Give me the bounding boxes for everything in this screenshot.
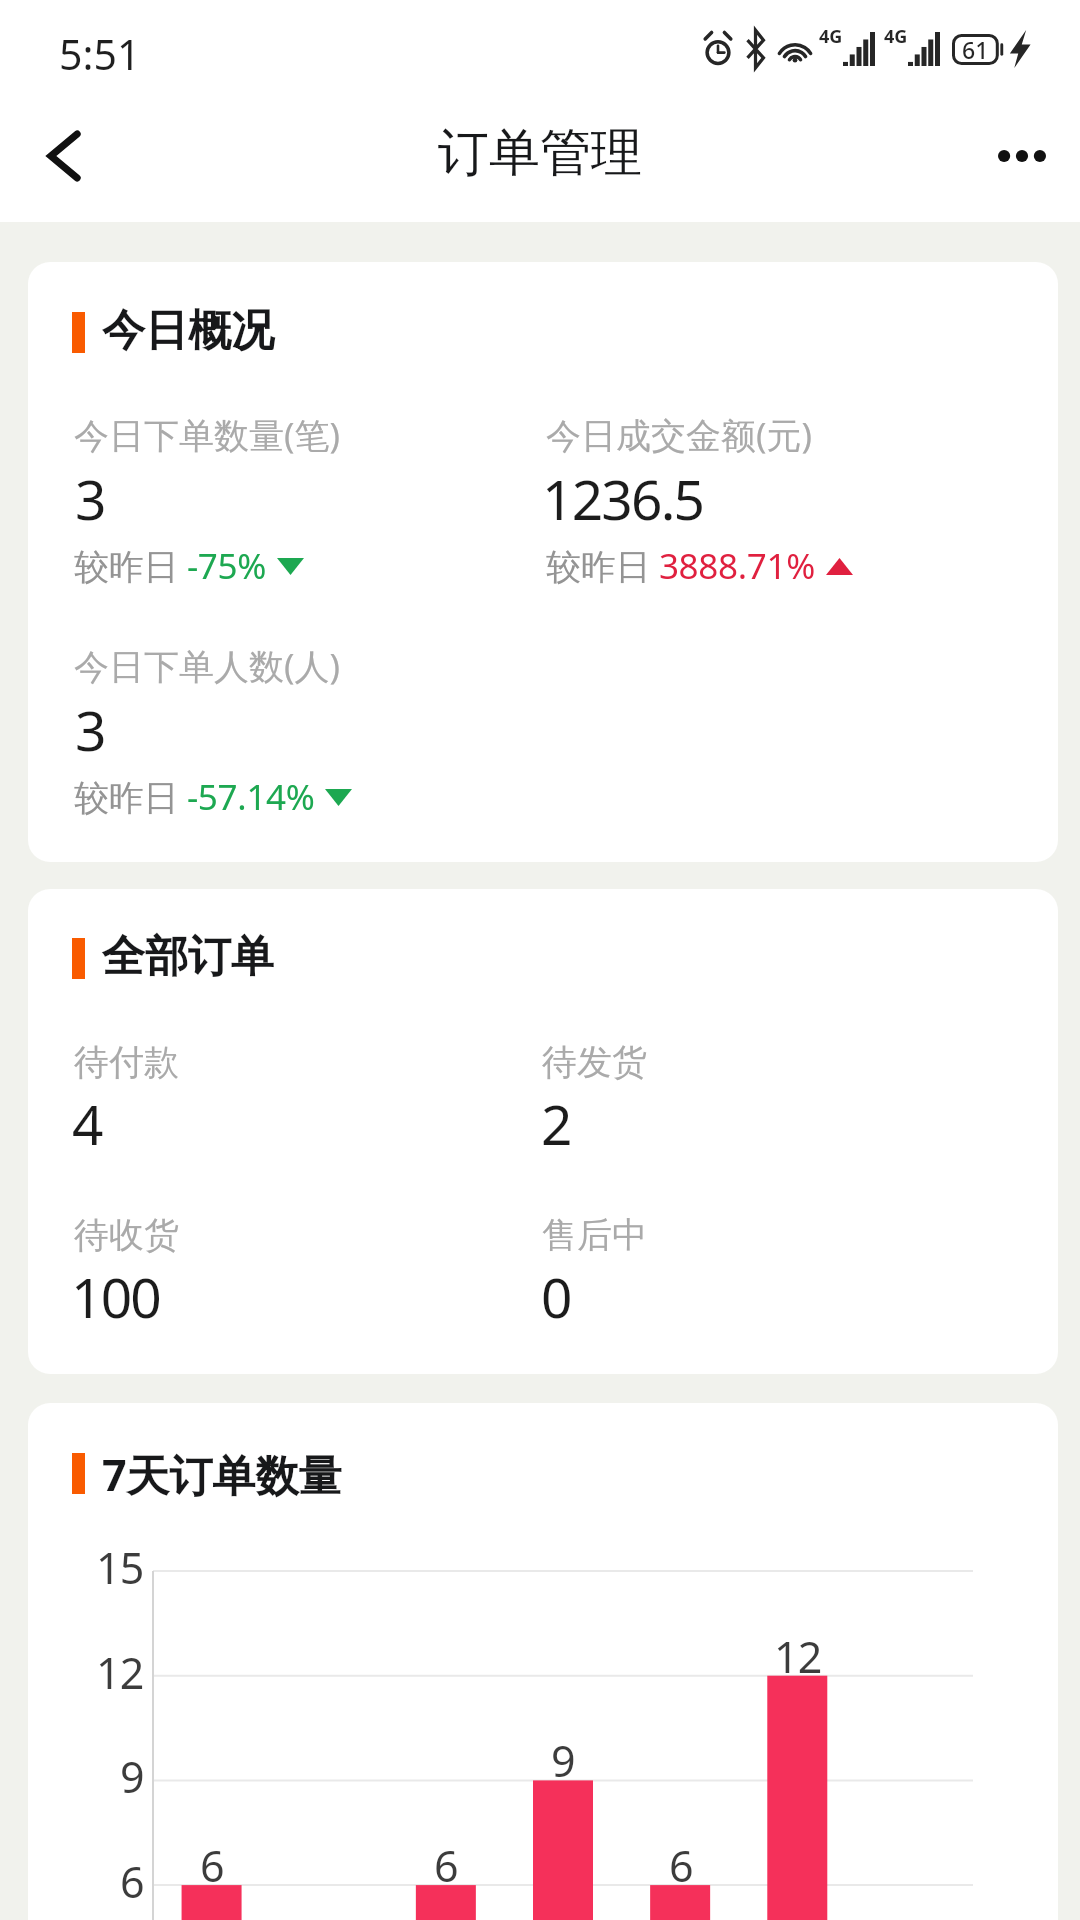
staticText: 15 <box>96 1538 144 1597</box>
button[interactable]: 今日概况 <box>28 262 1058 862</box>
staticText: 3 <box>75 692 105 767</box>
staticText: 较昨日 3888.71% <box>546 542 816 590</box>
staticText: 2 <box>541 1086 571 1161</box>
button[interactable]: 今日成交金额(元) <box>546 402 1006 592</box>
staticText: 较昨日 -57.14% <box>74 773 315 821</box>
staticText: 0 <box>541 1259 571 1334</box>
staticText: 今日下单数量(笔) <box>74 411 341 459</box>
staticText: 4 <box>72 1086 102 1161</box>
staticText: 今日下单人数(人) <box>74 642 341 690</box>
staticText: 待发货 <box>542 1040 647 1084</box>
staticText: 6 <box>669 1836 693 1895</box>
staticText: 100 <box>71 1259 160 1334</box>
staticText: 6 <box>120 1852 144 1911</box>
staticText: 61 <box>962 34 989 65</box>
staticText: 9 <box>551 1731 575 1790</box>
staticText: 3 <box>75 461 105 536</box>
button[interactable]: Back <box>18 110 110 202</box>
staticText: 12 <box>774 1627 822 1686</box>
button[interactable]: 今日下单数量(笔) <box>74 402 534 592</box>
staticText: 6 <box>434 1836 458 1895</box>
staticText: 待收货 <box>74 1213 179 1257</box>
staticText: 9 <box>120 1747 144 1806</box>
staticText: 今日概况 <box>102 304 274 358</box>
button[interactable]: 7天订单数量 <box>28 1403 1058 1920</box>
staticText: 售后中 <box>542 1213 647 1257</box>
button[interactable]: 今日下单人数(人) <box>74 633 534 823</box>
button[interactable]: 待发货 <box>542 1031 1002 1141</box>
button[interactable]: More options <box>976 110 1068 202</box>
staticText: 12 <box>96 1643 144 1702</box>
staticText: 1236.5 <box>542 461 704 536</box>
staticText: 7天订单数量 <box>102 1445 342 1504</box>
staticText: 较昨日 -75% <box>74 542 267 590</box>
staticText: 全部订单 <box>102 930 274 984</box>
button[interactable]: 售后中 <box>542 1204 1002 1314</box>
staticText: 今日成交金额(元) <box>546 411 813 459</box>
staticText: 6 <box>200 1836 224 1895</box>
staticText: 订单管理 <box>438 121 642 185</box>
staticText: 待付款 <box>74 1040 179 1084</box>
staticText: 4G <box>819 24 843 49</box>
staticText: 4G <box>884 24 908 49</box>
staticText: 5:51 <box>59 26 141 82</box>
button[interactable]: 全部订单 <box>28 889 1058 1374</box>
button[interactable]: 待付款 <box>74 1031 534 1141</box>
button[interactable]: 待收货 <box>74 1204 534 1314</box>
